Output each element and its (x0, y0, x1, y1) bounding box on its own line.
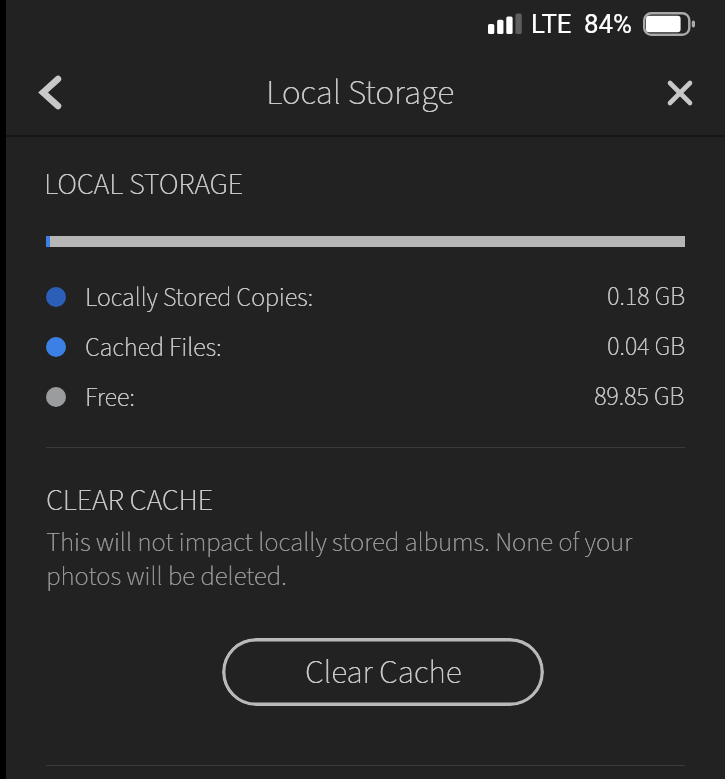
staticText: LOCAL STORAGE (44, 163, 243, 206)
staticText: Cached Files: (85, 329, 222, 366)
staticText: Locally Stored Copies: (85, 279, 313, 316)
staticText: CLEAR CACHE (46, 479, 213, 522)
staticText: This will not impact locally stored albu… (46, 524, 646, 596)
staticText: 84% (584, 9, 632, 39)
staticText: 89.85 GB (594, 378, 685, 415)
staticText: Clear Cache (305, 649, 462, 696)
staticText: Free: (85, 379, 135, 416)
staticText: LTE (531, 9, 572, 39)
button[interactable]: Close (653, 66, 707, 120)
button[interactable]: Back (23, 65, 77, 119)
staticText: Local Storage (266, 68, 455, 118)
staticText: 0.04 GB (607, 328, 685, 365)
staticText: 0.18 GB (607, 278, 685, 315)
button[interactable]: Clear Cache (222, 638, 544, 706)
